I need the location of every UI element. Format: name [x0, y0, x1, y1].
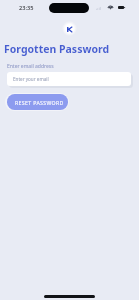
- staticText: Enter email address: [7, 63, 54, 70]
- staticText: Enter your email: [13, 76, 49, 82]
- button[interactable]: RESET PASSWORD: [7, 94, 68, 110]
- other: App logo: [62, 21, 77, 36]
- staticText: RESET PASSWORD: [15, 99, 64, 106]
- button[interactable]: Enter your email: [7, 72, 131, 86]
- other: Battery: [118, 6, 125, 9]
- other: Cellular signal: [96, 7, 101, 10]
- staticText: Forgotten Password: [4, 42, 110, 56]
- staticText: 23:35: [19, 4, 34, 12]
- other: Wi-Fi: [108, 5, 113, 9]
